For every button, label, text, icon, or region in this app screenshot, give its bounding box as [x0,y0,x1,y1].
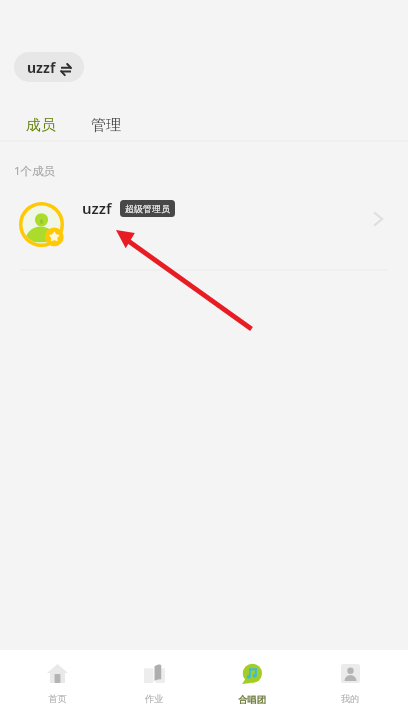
button[interactable]: 我的 [301,650,399,727]
staticText: uzzf [27,58,56,77]
staticText: 我的 [341,693,360,705]
staticText: 1个成员 [14,163,56,179]
button[interactable]: 合唱团 [203,650,301,727]
staticText: 管理 [91,116,121,135]
button[interactable]: 作业 [106,650,203,727]
staticText: 首页 [48,693,67,705]
button[interactable]: 成员 [7,116,73,142]
button[interactable]: 管理 [73,116,139,142]
staticText: uzzf [82,198,112,218]
staticText: 超级管理员 [125,203,170,214]
button[interactable]: uzzf [0,190,408,260]
other: Open member detail [373,212,385,226]
staticText: 作业 [145,693,164,705]
button[interactable]: 首页 [9,650,106,727]
staticText: 合唱团 [238,694,266,706]
staticText: 成员 [26,116,56,135]
button[interactable]: uzzf [14,52,84,82]
